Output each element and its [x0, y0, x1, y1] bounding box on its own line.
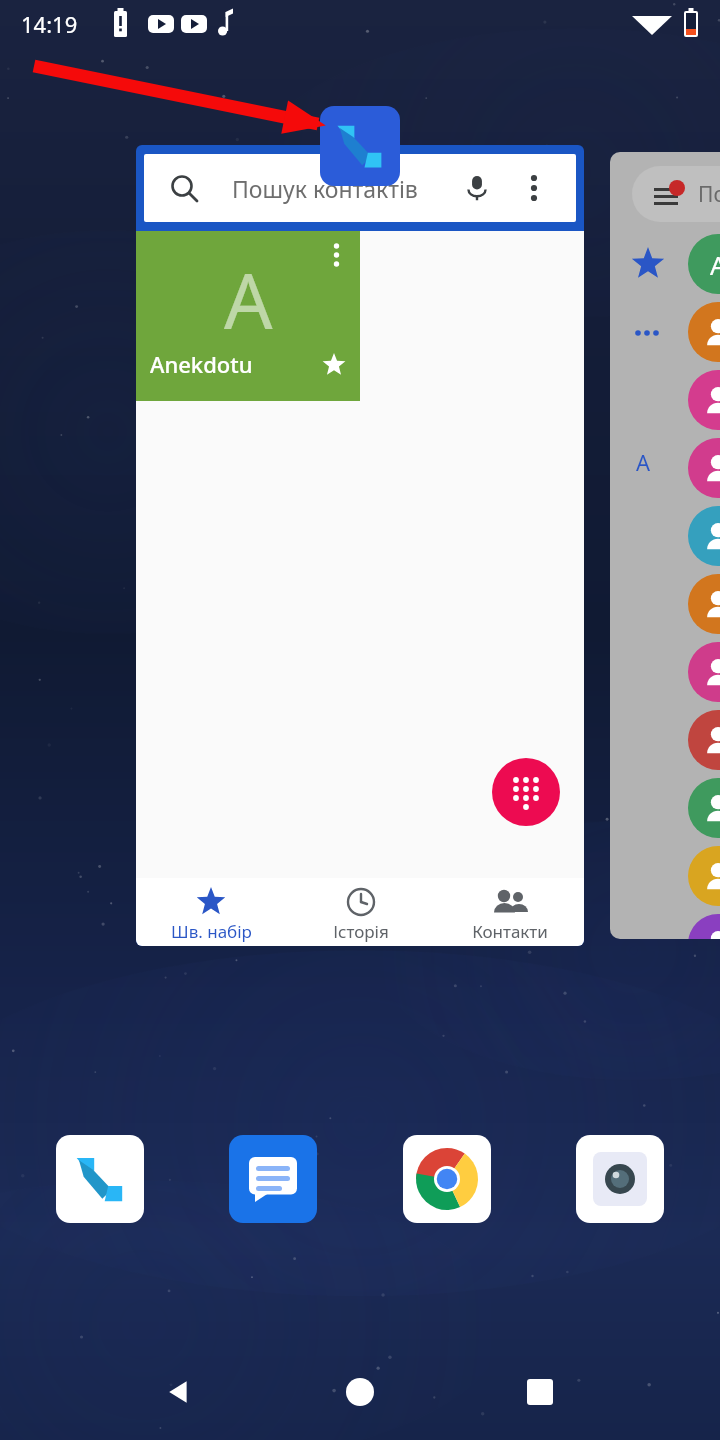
- other: Search: [170, 174, 198, 202]
- button[interactable]: По: [610, 152, 720, 939]
- staticText: Історія: [333, 920, 389, 943]
- button[interactable]: Search: [144, 154, 576, 222]
- other: Voice search: [464, 175, 490, 201]
- staticText: 14:19: [21, 9, 78, 39]
- button[interactable]: A: [136, 231, 360, 401]
- button[interactable]: Шв. набір: [136, 878, 286, 943]
- staticText: По: [698, 180, 720, 209]
- button[interactable]: Phone app icon: [320, 106, 400, 186]
- button[interactable]: Chrome: [403, 1135, 491, 1223]
- button[interactable]: Messages: [229, 1135, 317, 1223]
- button[interactable]: Історія: [286, 878, 435, 943]
- staticText: Пошук контактів: [232, 173, 418, 204]
- staticText: A: [710, 247, 720, 282]
- button[interactable]: Контакти: [435, 878, 584, 943]
- button[interactable]: Dialpad: [492, 758, 560, 826]
- button[interactable]: Home: [270, 1344, 450, 1440]
- button[interactable]: Contact options: [318, 237, 354, 273]
- button[interactable]: Back: [90, 1344, 270, 1440]
- button[interactable]: Phone: [56, 1135, 144, 1223]
- staticText: A: [224, 248, 273, 352]
- staticText: Шв. набір: [171, 920, 252, 943]
- staticText: A: [636, 447, 651, 477]
- button[interactable]: Camera: [576, 1135, 664, 1223]
- button[interactable]: More options: [514, 168, 554, 208]
- staticText: Anekdotu: [150, 349, 253, 379]
- button[interactable]: Recent apps: [450, 1344, 630, 1440]
- staticText: Контакти: [472, 920, 548, 943]
